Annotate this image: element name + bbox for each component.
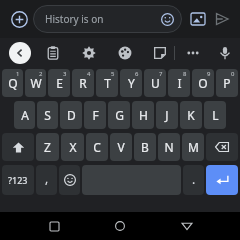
staticText: A [21,107,29,123]
staticText: R [79,75,87,91]
staticText: 2 [39,70,43,78]
staticText: V [117,139,125,155]
button[interactable]: Emoji [159,11,175,27]
staticText: 1 [16,70,20,78]
button[interactable]: Y [120,69,142,97]
button[interactable]: D [60,101,82,129]
button[interactable]: V [110,133,132,161]
button[interactable]: Shift [2,133,34,161]
staticText: 7 [159,70,163,78]
staticText: 3 [63,70,67,78]
button[interactable]: Themes [114,42,136,64]
button[interactable]: Sticker [149,42,171,64]
button[interactable]: Enter [206,165,238,195]
staticText: G [115,107,124,123]
button[interactable]: ?123 [2,165,34,195]
button[interactable]: Back [9,42,31,64]
staticText: . [192,171,196,187]
button[interactable]: U [144,69,166,97]
button[interactable]: Settings [78,42,100,64]
button[interactable]: Send [210,7,234,31]
staticText: 5 [111,70,115,78]
staticText: T [104,75,111,91]
button[interactable]: T [96,69,118,97]
button[interactable]: J [156,101,178,129]
button[interactable]: W [25,69,46,97]
button[interactable]: E [48,69,70,97]
staticText: History is on [45,12,104,26]
button[interactable]: K [180,101,202,129]
button[interactable]: H [132,101,154,129]
button[interactable]: X [61,133,84,161]
staticText: J [165,107,169,123]
button[interactable]: Z [36,133,59,161]
staticText: B [141,139,149,155]
staticText: O [198,75,208,91]
staticText: S [44,107,51,123]
button[interactable]: B [134,133,156,161]
staticText: D [67,107,76,123]
staticText: 6 [135,70,139,78]
button[interactable]: C [86,133,108,161]
staticText: 9 [207,70,211,78]
button[interactable]: History is on [33,5,182,33]
button[interactable]: Add attachment [6,6,32,32]
staticText: H [139,107,148,123]
button[interactable]: O [192,69,214,97]
button[interactable]: R [72,69,94,97]
button[interactable]: Clipboard [42,42,64,64]
button[interactable]: , [36,165,57,195]
button[interactable]: L [204,101,226,129]
staticText: X [69,139,77,155]
button[interactable]: . [183,165,204,195]
staticText: K [187,107,195,123]
staticText: C [93,139,101,155]
button[interactable]: Recent apps [41,213,67,239]
button[interactable]: Emoji keyboard [59,165,80,195]
staticText: M [188,139,199,155]
button[interactable]: Voice input [214,42,236,64]
staticText: E [56,75,63,91]
staticText: Q [8,75,18,91]
button[interactable]: Q [2,69,23,97]
button[interactable]: N [158,133,180,161]
staticText: Z [44,139,51,155]
button[interactable]: G [108,101,130,129]
staticText: 0 [231,70,235,78]
staticText: L [212,107,219,123]
button[interactable]: I [168,69,190,97]
staticText: U [151,75,160,91]
staticText: Y [128,75,135,91]
button[interactable]: Gallery [186,7,210,31]
button[interactable]: P [216,69,238,97]
staticText: ?123 [8,174,28,186]
staticText: F [92,107,99,123]
staticText: 8 [183,70,187,78]
button[interactable]: Back [174,213,200,239]
button[interactable]: A [14,101,35,129]
button[interactable]: Backspace [206,133,238,161]
staticText: N [164,139,174,155]
button[interactable]: S [37,101,58,129]
staticText: W [30,75,42,91]
button[interactable]: More options [182,42,204,64]
button[interactable]: Home [107,213,133,239]
staticText: 4 [87,70,91,78]
staticText: I [177,75,182,91]
button[interactable]: M [182,133,204,161]
button[interactable]: F [84,101,106,129]
staticText: , [45,170,49,186]
staticText: P [223,75,231,91]
